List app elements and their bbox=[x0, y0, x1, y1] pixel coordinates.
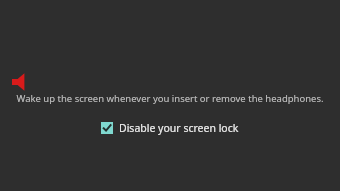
staticText: Disable your screen lock bbox=[119, 121, 239, 135]
button[interactable]: Disable your screen lock bbox=[99, 119, 241, 137]
button[interactable]: Volume bbox=[10, 71, 30, 93]
staticText: Wake up the screen whenever you insert o… bbox=[16, 92, 324, 105]
